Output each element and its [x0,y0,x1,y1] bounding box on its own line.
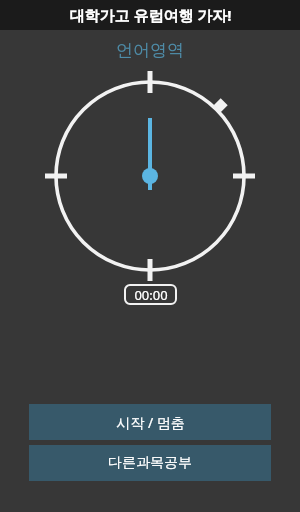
staticText: 00:00 [134,286,168,304]
staticText: 시작 / 멈춤 [116,413,185,432]
button[interactable]: 다른과목공부 [29,445,271,481]
staticText: 다른과목공부 [108,454,192,472]
staticText: 언어영역 [116,40,184,61]
staticText: 대학가고 유럽여행 가자! [69,5,232,25]
button[interactable]: 시작 / 멈춤 [29,404,271,440]
